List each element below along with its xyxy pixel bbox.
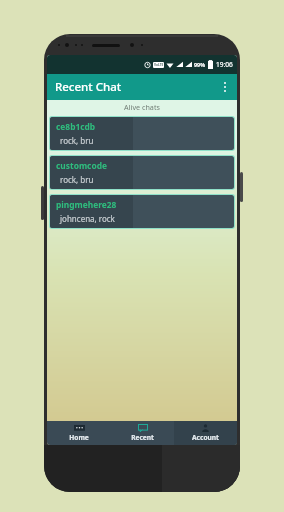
staticText: rock, bru [60,174,94,185]
staticText: customcode [56,160,107,171]
button[interactable]: Recent [111,421,174,445]
staticText: Recent [131,433,154,442]
staticText: 19:06 [216,60,233,69]
button[interactable]: More options [213,75,237,99]
button[interactable]: ce8b1cdb [50,117,234,150]
button[interactable]: customcode [50,156,234,189]
button[interactable]: pingmehere28 [50,195,234,228]
staticText: Recent Chat [55,79,122,95]
staticText: Home [69,433,89,442]
staticText: ce8b1cdb [56,121,96,132]
staticText: Account [192,433,219,442]
button[interactable]: Account [174,421,237,445]
button[interactable]: Home [47,421,111,445]
staticText: Alive chats [124,102,160,112]
staticText: pingmehere28 [56,199,117,210]
staticText: johncena, rock [60,213,115,224]
staticText: VoLTE [154,63,164,67]
staticText: rock, bru [60,135,94,146]
staticText: 99% [194,61,206,68]
